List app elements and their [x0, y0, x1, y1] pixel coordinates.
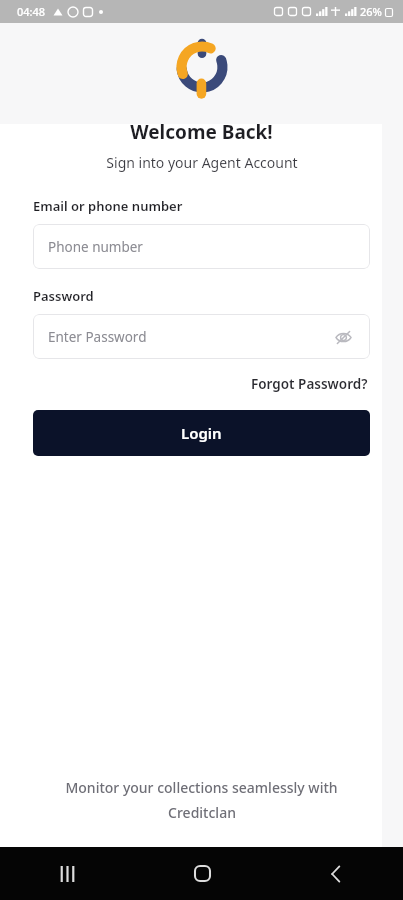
button[interactable]: Enter Password — [33, 314, 370, 359]
button[interactable]: Login — [33, 410, 370, 456]
staticText: Enter Password — [48, 328, 147, 346]
staticText: Welcome Back! — [130, 119, 273, 145]
button[interactable]: Home — [135, 847, 269, 900]
staticText: Creditclan — [168, 803, 236, 822]
button[interactable]: Forgot Password? — [249, 373, 370, 395]
staticText: Monitor your collections seamlessly with — [65, 778, 338, 797]
staticText: Phone number — [48, 238, 143, 256]
staticText: Login — [181, 423, 222, 443]
staticText: Email or phone number — [33, 197, 183, 215]
button[interactable]: Recent apps — [0, 847, 135, 900]
staticText: Forgot Password? — [251, 375, 368, 393]
button[interactable]: Phone number — [33, 224, 370, 269]
staticText: 26% — [360, 4, 382, 19]
staticText: Password — [33, 287, 94, 305]
staticText: Sign into your Agent Account — [106, 153, 298, 172]
staticText: 04:48 — [17, 4, 46, 19]
button[interactable]: Back — [269, 847, 403, 900]
button[interactable]: Show password — [331, 325, 355, 349]
